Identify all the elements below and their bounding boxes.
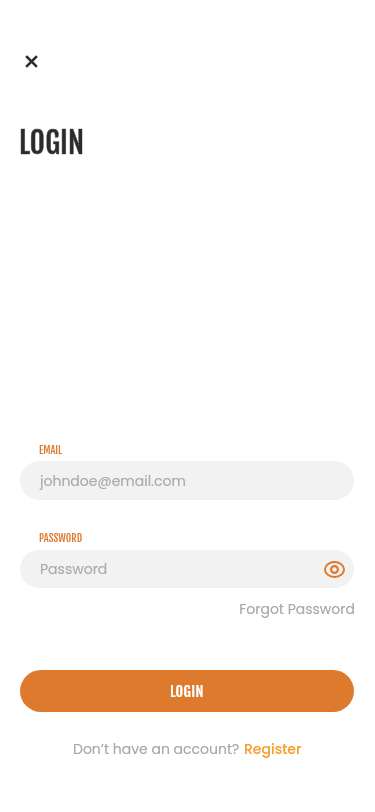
button[interactable]: Close — [17, 47, 45, 75]
button[interactable]: Show password — [321, 556, 347, 582]
button[interactable]: Password — [20, 550, 354, 588]
staticText: LOGIN — [19, 124, 85, 161]
staticText: Don’t have an account? — [73, 739, 244, 759]
button[interactable]: Register — [244, 739, 302, 759]
staticText: EMAIL — [39, 443, 62, 456]
staticText: johndoe@email.com — [40, 471, 186, 491]
staticText: PASSWORD — [39, 531, 83, 544]
button[interactable]: Forgot Password — [0, 599, 355, 619]
button[interactable]: LOGIN — [20, 670, 354, 712]
button[interactable]: johndoe@email.com — [20, 461, 354, 500]
staticText: LOGIN — [170, 682, 204, 700]
staticText: LOGIN — [19, 124, 85, 161]
staticText: Password — [40, 559, 108, 579]
